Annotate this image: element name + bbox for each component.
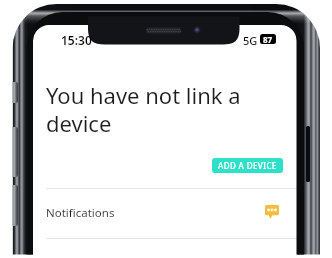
other: Notifications xyxy=(265,205,279,219)
staticText: Notifications xyxy=(46,205,115,221)
staticText: 5G xyxy=(243,33,258,48)
button[interactable]: ADD A DEVICE xyxy=(212,158,283,173)
staticText: 15:30 xyxy=(61,32,92,48)
button[interactable]: Notifications xyxy=(33,189,297,238)
staticText: You have not link a device xyxy=(46,80,261,138)
staticText: 87 xyxy=(263,34,273,44)
staticText: ADD A DEVICE xyxy=(218,160,277,171)
